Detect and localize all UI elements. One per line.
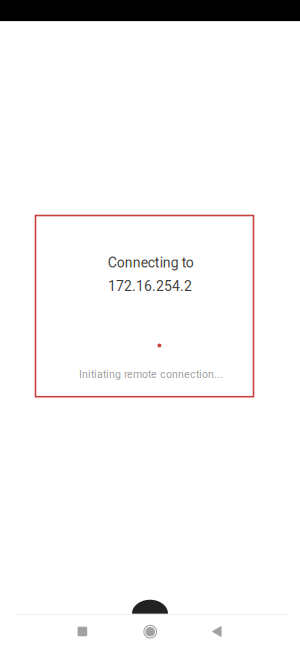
button[interactable]: Recent apps	[57, 615, 107, 647]
button[interactable]: Home	[125, 616, 175, 648]
staticText: Connecting to	[108, 255, 194, 271]
staticText: Initiating remote connection...	[79, 368, 223, 381]
button[interactable]: Back	[192, 615, 242, 647]
staticText: 172.16.254.2	[108, 278, 192, 294]
